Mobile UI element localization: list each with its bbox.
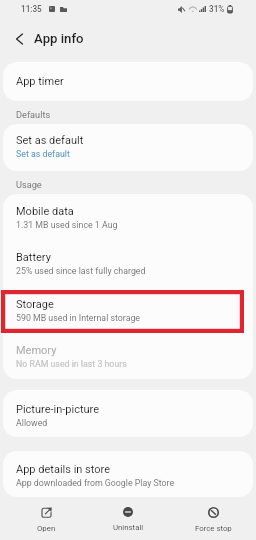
staticText: Set as default: [16, 149, 70, 159]
button[interactable]: App details in store: [3, 451, 253, 497]
staticText: Picture-in-picture: [16, 403, 100, 416]
staticText: Open: [37, 524, 56, 533]
button[interactable]: Memory: [3, 333, 253, 379]
staticText: No RAM used in last 3 hours: [16, 359, 127, 369]
button[interactable]: Back: [6, 26, 32, 52]
staticText: Mobile data: [16, 205, 74, 218]
staticText: 590 MB used in Internal storage: [16, 313, 141, 323]
button[interactable]: Open: [4, 497, 88, 540]
button[interactable]: Mobile data: [3, 194, 253, 240]
staticText: 25% used since last fully charged: [16, 266, 146, 276]
staticText: App downloaded from Google Play Store: [16, 478, 175, 488]
staticText: Battery: [16, 251, 51, 264]
staticText: 11:35: [21, 4, 42, 14]
staticText: Usage: [16, 179, 42, 190]
staticText: App info: [34, 31, 84, 46]
staticText: 31%: [209, 4, 225, 14]
button[interactable]: Uninstall: [86, 497, 170, 540]
button[interactable]: Set as default: [3, 124, 253, 171]
button[interactable]: Picture-in-picture: [3, 390, 253, 437]
button[interactable]: App timer: [3, 62, 253, 101]
staticText: App details in store: [16, 463, 111, 476]
staticText: Storage: [16, 298, 54, 311]
button[interactable]: Force stop: [171, 497, 255, 540]
staticText: 1.31 MB used since 1 Aug: [16, 220, 118, 230]
staticText: Uninstall: [113, 523, 144, 532]
staticText: Defaults: [16, 109, 51, 120]
staticText: Set as default: [16, 134, 84, 147]
button[interactable]: Storage: [3, 287, 253, 333]
staticText: Force stop: [195, 524, 232, 533]
staticText: Allowed: [16, 418, 48, 428]
button[interactable]: Battery: [3, 240, 253, 287]
staticText: App timer: [16, 75, 64, 88]
staticText: Memory: [16, 344, 57, 357]
